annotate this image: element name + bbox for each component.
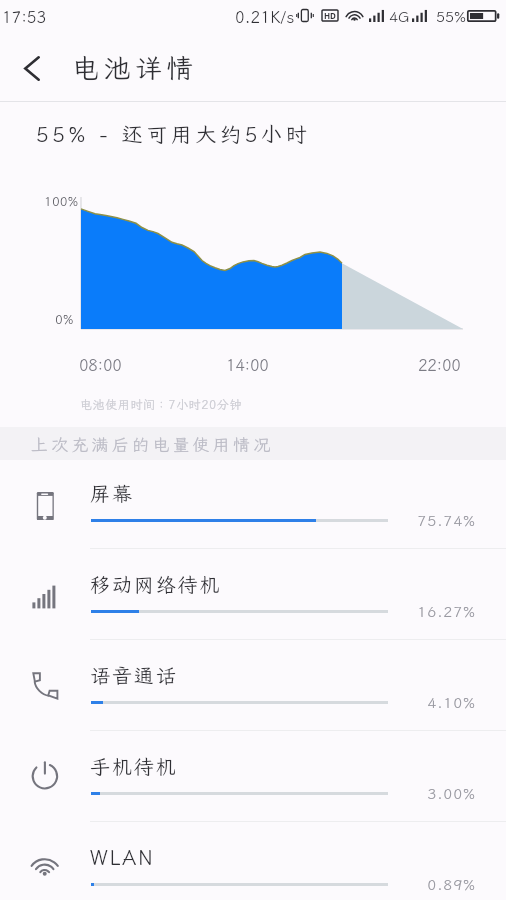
- staticText: 4G: [389, 7, 410, 27]
- staticText: 08:00: [79, 354, 122, 375]
- button[interactable]: 语音通话: [0, 640, 506, 731]
- button[interactable]: 屏幕: [0, 458, 506, 549]
- staticText: HD: [324, 10, 336, 21]
- staticText: 14:00: [226, 354, 269, 375]
- button[interactable]: 手机待机: [0, 731, 506, 822]
- staticText: 0.21K/s: [235, 6, 295, 27]
- staticText: 0%: [55, 311, 74, 328]
- button[interactable]: WLAN: [0, 822, 506, 900]
- staticText: 移动网络待机: [90, 571, 222, 597]
- staticText: 75.74%: [400, 511, 476, 531]
- staticText: 手机待机: [90, 753, 178, 779]
- button[interactable]: 移动网络待机: [0, 549, 506, 640]
- staticText: 语音通话: [90, 662, 178, 688]
- staticText: 16.27%: [400, 602, 476, 622]
- staticText: 4.10%: [400, 693, 476, 713]
- staticText: 电池使用时间：7小时20分钟: [80, 397, 243, 413]
- staticText: 上次充满后的电量使用情况: [31, 433, 274, 455]
- button[interactable]: Back: [4, 33, 60, 104]
- staticText: 17:53: [2, 6, 47, 27]
- staticText: 55% - 还可用大约5小时: [36, 120, 311, 148]
- staticText: 3.00%: [400, 784, 476, 804]
- staticText: 100%: [44, 193, 79, 210]
- staticText: 电池详情: [72, 50, 198, 86]
- staticText: 55%: [436, 7, 467, 27]
- staticText: WLAN: [90, 844, 155, 870]
- staticText: 22:00: [418, 354, 461, 375]
- staticText: 0.89%: [400, 875, 476, 895]
- staticText: 屏幕: [90, 480, 134, 506]
